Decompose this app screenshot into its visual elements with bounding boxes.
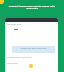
staticText: Write a reply — [7, 62, 18, 64]
staticText: Support teams and society needs with you… — [7, 4, 57, 10]
button[interactable]: Thanks! We'll be in touch soon. — [12, 46, 55, 53]
staticText: Message privacy information — [7, 56, 32, 58]
button[interactable]: Send — [29, 64, 33, 68]
staticText: Thanks! We'll be in touch soon. — [12, 47, 55, 49]
staticText: Application form — [7, 23, 22, 26]
